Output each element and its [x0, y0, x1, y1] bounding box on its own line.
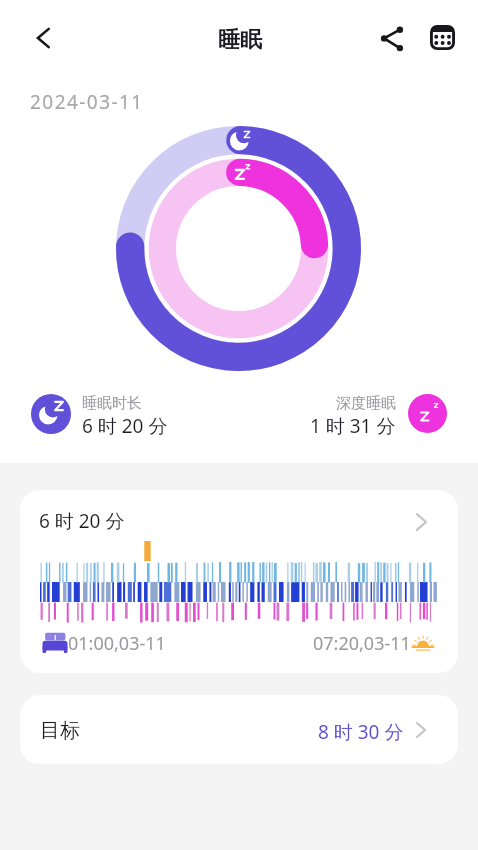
- button[interactable]: 目标: [20, 695, 458, 764]
- staticText: 8 时 30 分: [318, 719, 404, 745]
- button[interactable]: Calendar: [421, 16, 463, 58]
- staticText: 睡眠时长: [82, 394, 142, 413]
- staticText: 01:00,03-11: [68, 631, 166, 656]
- staticText: 深度睡眠: [336, 394, 396, 413]
- staticText: 07:20,03-11: [313, 631, 411, 656]
- staticText: 6 时 20 分: [39, 508, 125, 534]
- staticText: 6 时 20 分: [82, 413, 168, 438]
- staticText: 2024-03-11: [30, 89, 144, 115]
- staticText: 睡眠: [218, 26, 262, 54]
- button[interactable]: Back: [20, 16, 64, 60]
- button[interactable]: 6 时 20 分: [20, 490, 458, 673]
- staticText: 目标: [40, 718, 80, 743]
- button[interactable]: Share: [372, 16, 414, 58]
- staticText: 1 时 31 分: [310, 413, 396, 438]
